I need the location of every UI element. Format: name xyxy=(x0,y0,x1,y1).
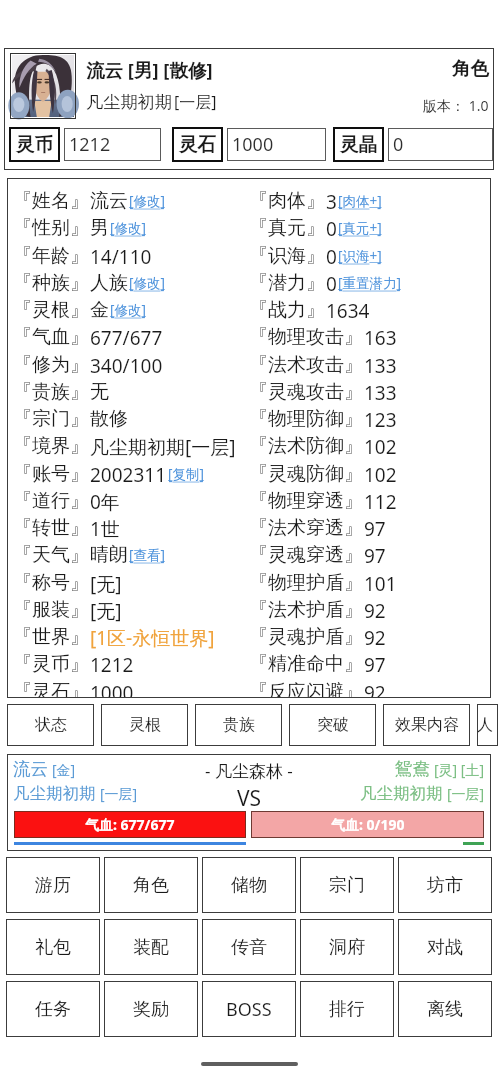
staticText: 340/100 xyxy=(90,353,163,377)
staticText: 14/110 xyxy=(90,244,152,268)
button[interactable]: 效果内容 xyxy=(383,704,470,746)
staticText: 3 xyxy=(326,189,337,213)
staticText: 『种族』 xyxy=(13,271,89,295)
staticText: 『姓名』 xyxy=(13,189,89,213)
staticText: 『灵石』 xyxy=(13,680,89,698)
staticText: 贵族 xyxy=(223,715,255,735)
staticText: [一层] xyxy=(174,91,217,113)
staticText: 『灵魂攻击』 xyxy=(249,380,363,404)
button[interactable]: 洞府 xyxy=(300,919,394,975)
staticText: 『气血』 xyxy=(13,325,89,349)
staticText: 散修 xyxy=(90,407,128,431)
button[interactable]: [查看] xyxy=(129,546,165,564)
button[interactable]: [修改] xyxy=(129,274,165,292)
button[interactable]: [修改] xyxy=(110,301,146,319)
staticText: 突破 xyxy=(317,715,349,735)
button[interactable]: 状态 xyxy=(7,704,94,746)
staticText: 92 xyxy=(364,598,386,622)
button[interactable]: 灵根 xyxy=(101,704,188,746)
staticText: 『境界』 xyxy=(13,434,89,458)
staticText: 灵晶 xyxy=(340,133,377,156)
staticText: 无 xyxy=(90,380,109,404)
button[interactable]: 任务 xyxy=(6,981,100,1037)
button[interactable]: 储物 xyxy=(202,857,296,913)
button[interactable]: 突破 xyxy=(289,704,376,746)
staticText: 『物理防御』 xyxy=(249,407,363,431)
staticText: 『物理攻击』 xyxy=(249,325,363,349)
staticText: 流云 xyxy=(13,758,48,780)
staticText: 0 xyxy=(326,271,337,295)
staticText: 0 xyxy=(326,244,337,268)
button[interactable]: 贵族 xyxy=(195,704,282,746)
staticText: 人族 xyxy=(90,271,128,295)
staticText: 『灵魂护盾』 xyxy=(249,625,363,649)
staticText: 163 xyxy=(364,325,397,349)
staticText: 677/677 xyxy=(90,325,163,349)
staticText: 1000 xyxy=(90,680,134,698)
staticText: 『道行』 xyxy=(13,489,89,513)
staticText: [一层] xyxy=(100,784,138,803)
button[interactable]: 礼包 xyxy=(6,919,100,975)
staticText: 『反应闪避』 xyxy=(249,680,363,698)
button[interactable]: [肉体+] xyxy=(338,192,382,210)
staticText: 灵石 xyxy=(179,133,216,156)
staticText: 洞府 xyxy=(329,936,365,959)
staticText: 灵币 xyxy=(16,133,53,156)
button[interactable]: 奖励 xyxy=(104,981,198,1037)
staticText: 灵根 xyxy=(129,715,161,735)
staticText: 『账号』 xyxy=(13,462,89,486)
button[interactable]: 角色 xyxy=(104,857,198,913)
staticText: 凡尘期初期 xyxy=(13,783,96,804)
button[interactable]: 传音 xyxy=(202,919,296,975)
staticText: 『法术穿透』 xyxy=(249,516,363,540)
button[interactable]: 坊市 xyxy=(398,857,492,913)
staticText: 男 xyxy=(90,216,109,240)
staticText: 『贵族』 xyxy=(13,380,89,404)
button[interactable]: BOSS xyxy=(202,981,296,1037)
staticText: 『服装』 xyxy=(13,598,89,622)
button[interactable]: 人物 xyxy=(477,704,498,746)
staticText: VS xyxy=(237,784,262,813)
staticText: 97 xyxy=(364,543,386,567)
button[interactable]: 装配 xyxy=(104,919,198,975)
staticText: 『灵魂穿透』 xyxy=(249,543,363,567)
staticText: 鴛鴦 xyxy=(395,758,430,780)
staticText: [修改] xyxy=(129,274,165,292)
button[interactable]: [真元+] xyxy=(338,219,382,237)
button[interactable]: Avatar xyxy=(12,55,74,117)
button[interactable]: [识海+] xyxy=(338,247,382,265)
staticText: 97 xyxy=(364,516,386,540)
staticText: 晴朗 xyxy=(90,543,128,567)
button[interactable]: 对战 xyxy=(398,919,492,975)
staticText: 凡尘期初期 xyxy=(86,91,172,113)
button[interactable]: [复制] xyxy=(168,465,204,483)
staticText: 『天气』 xyxy=(13,543,89,567)
staticText: [修改] xyxy=(110,301,146,319)
staticText: 流云 xyxy=(90,189,128,213)
staticText: 133 xyxy=(364,353,397,377)
staticText: 储物 xyxy=(231,874,267,897)
staticText: 0 xyxy=(326,216,337,240)
button[interactable]: 宗门 xyxy=(300,857,394,913)
staticText: 角色 xyxy=(133,874,169,897)
button[interactable]: 离线 xyxy=(398,981,492,1037)
button[interactable]: 游历 xyxy=(6,857,100,913)
button[interactable]: 排行 xyxy=(300,981,394,1037)
staticText: [一层] xyxy=(447,784,485,803)
staticText: 离线 xyxy=(427,998,463,1021)
staticText: 『物理护盾』 xyxy=(249,571,363,595)
staticText: 流云 [男] [散修] xyxy=(86,57,213,82)
staticText: BOSS xyxy=(226,997,272,1022)
staticText: 92 xyxy=(364,625,386,649)
button[interactable]: [修改] xyxy=(129,192,165,210)
button[interactable]: [重置潜力] xyxy=(338,274,401,292)
staticText: 装配 xyxy=(133,936,169,959)
staticText: 效果内容 xyxy=(395,715,459,735)
button[interactable]: [修改] xyxy=(110,219,146,237)
staticText: [肉体+] xyxy=(338,192,382,210)
staticText: 『识海』 xyxy=(249,244,325,268)
staticText: 『战力』 xyxy=(249,298,325,322)
staticText: 102 xyxy=(364,434,397,458)
staticText: 传音 xyxy=(231,936,267,959)
staticText: [复制] xyxy=(168,465,204,483)
